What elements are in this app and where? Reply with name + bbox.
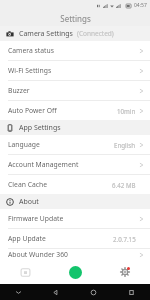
button[interactable]: Back: [37, 284, 74, 300]
staticText: Settings: [60, 13, 91, 24]
staticText: English: [114, 141, 136, 149]
button[interactable]: App Update: [0, 229, 150, 248]
staticText: Camera Settings: [19, 29, 73, 39]
button[interactable]: Wi-Fi Settings: [0, 61, 150, 80]
button[interactable]: Auto Power Off: [0, 101, 150, 120]
staticText: 04:57: [134, 2, 147, 9]
staticText: (Connected): [77, 29, 114, 38]
button[interactable]: Gallery: [0, 260, 50, 284]
staticText: App Settings: [19, 123, 61, 133]
button[interactable]: Recent apps: [112, 284, 150, 300]
button[interactable]: Settings: [100, 260, 150, 284]
button[interactable]: Capture: [50, 260, 100, 284]
button[interactable]: Language: [0, 135, 150, 154]
staticText: 10min: [117, 107, 136, 115]
button[interactable]: Camera status: [0, 41, 150, 60]
button[interactable]: Account Management: [0, 155, 150, 174]
staticText: Camera status: [8, 46, 54, 55]
staticText: Account Management: [8, 160, 79, 169]
staticText: Wi-Fi Settings: [8, 66, 52, 75]
staticText: About: [19, 197, 39, 207]
staticText: App Update: [8, 234, 46, 243]
staticText: Language: [8, 140, 40, 149]
staticText: Buzzer: [8, 86, 30, 95]
button[interactable]: Buzzer: [0, 81, 150, 100]
staticText: 2.0.7.15: [113, 235, 136, 243]
staticText: Firmware Update: [8, 214, 64, 223]
button[interactable]: Home: [74, 284, 112, 300]
staticText: Clean Cache: [8, 180, 48, 189]
button[interactable]: About Wunder 360: [0, 249, 150, 260]
staticText: 6.42 MB: [112, 181, 136, 189]
button[interactable]: Hide navigation bar: [0, 284, 37, 300]
staticText: Auto Power Off: [8, 106, 57, 115]
button[interactable]: Clean Cache: [0, 175, 150, 194]
staticText: About Wunder 360: [8, 250, 68, 259]
button[interactable]: Firmware Update: [0, 209, 150, 228]
